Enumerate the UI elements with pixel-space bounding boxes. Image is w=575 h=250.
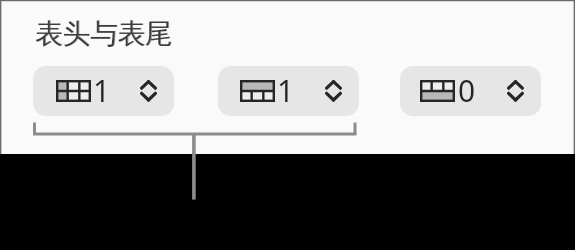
button[interactable]: Decrease Header columns — [131, 91, 165, 114]
staticText: 0 — [458, 70, 476, 111]
button[interactable]: Increase Footer rows — [498, 68, 532, 91]
button[interactable]: Decrease Footer rows — [498, 91, 532, 114]
button[interactable]: Increase Header rows — [316, 68, 350, 91]
staticText: 1 — [277, 70, 295, 111]
staticText: 表头与表尾 — [36, 17, 174, 52]
button[interactable]: Increase Header columns — [131, 68, 165, 91]
staticText: 1 — [93, 70, 111, 111]
staticText: 表头与表尾 — [35, 17, 173, 52]
button[interactable]: Header rows — [218, 66, 359, 116]
button[interactable]: Footer rows — [400, 66, 541, 116]
button[interactable]: Header columns — [33, 66, 174, 116]
button[interactable]: Decrease Header rows — [316, 91, 350, 114]
